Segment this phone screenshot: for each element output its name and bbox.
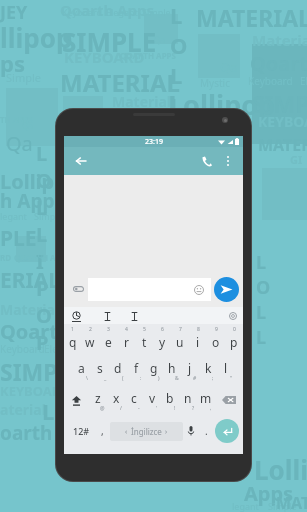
- button[interactable]: 5: [135, 325, 153, 355]
- staticText: Simple: [268, 500, 297, 512]
- staticText: oarth Apps: [0, 420, 104, 446]
- button[interactable]: .: [199, 415, 213, 447]
- staticText: z: [95, 390, 101, 406]
- staticText: g: [150, 360, 158, 376]
- button[interactable]: z: [88, 385, 107, 415]
- staticText: MATEF: [258, 134, 307, 156]
- staticText: Qa: [38, 252, 47, 260]
- staticText: O: [36, 302, 52, 329]
- staticText: l: [224, 360, 228, 376]
- button[interactable]: Cursor left: [102, 311, 112, 321]
- staticText: SIMPL: [0, 356, 71, 387]
- button[interactable]: Attach: [68, 279, 88, 299]
- button[interactable]: b: [161, 385, 179, 415]
- button[interactable]: v: [143, 385, 161, 415]
- staticText: P: [36, 329, 49, 356]
- staticText: L: [256, 300, 267, 325]
- staticText: Keyboard: [248, 74, 293, 88]
- staticText: O: [256, 275, 271, 300]
- staticText: \: [86, 375, 88, 382]
- staticText: j: [188, 360, 192, 376]
- button[interactable]: 6: [153, 325, 171, 355]
- staticText: o: [212, 334, 220, 350]
- button[interactable]: 1: [64, 325, 81, 355]
- staticText: L: [170, 90, 183, 120]
- button[interactable]: Backspace: [215, 385, 243, 415]
- staticText: ›: [165, 427, 168, 437]
- staticText: f: [134, 360, 139, 376]
- button[interactable]: s: [91, 355, 109, 385]
- staticText: ps: [0, 48, 25, 78]
- staticText: I: [36, 248, 44, 275]
- staticText: u: [176, 334, 184, 350]
- button[interactable]: Enter: [215, 419, 239, 443]
- button[interactable]: 4: [117, 325, 135, 355]
- button[interactable]: Settings: [227, 310, 238, 321]
- button[interactable]: ‹: [110, 422, 183, 441]
- staticText: L: [36, 221, 48, 248]
- button[interactable]: Emoji: [192, 283, 206, 297]
- button[interactable]: Voice input mode: [71, 310, 82, 321]
- staticText: y: [159, 334, 166, 350]
- button[interactable]: k: [199, 355, 217, 385]
- button[interactable]: 7: [171, 325, 189, 355]
- staticText: Keyboard: [0, 342, 45, 356]
- staticText: Qoarth Apps: [60, 0, 154, 20]
- staticText: Qoarth: [0, 318, 71, 345]
- staticText: /: [120, 405, 122, 412]
- button[interactable]: d: [109, 355, 127, 385]
- button[interactable]: 0: [225, 325, 243, 355]
- staticText: -: [138, 405, 140, 412]
- button[interactable]: f: [127, 355, 145, 385]
- button[interactable]: a: [72, 355, 91, 385]
- button[interactable]: c: [125, 385, 143, 415]
- button[interactable]: 2: [81, 325, 99, 355]
- button[interactable]: Call: [196, 150, 218, 172]
- staticText: QOARTH APPS: [14, 252, 70, 263]
- staticText: Simple: [142, 6, 171, 18]
- staticText: 7: [179, 326, 182, 333]
- button[interactable]: g: [145, 355, 163, 385]
- button[interactable]: x: [107, 385, 125, 415]
- staticText: (: [122, 375, 124, 382]
- staticText: L: [36, 140, 48, 167]
- button[interactable]: 9: [207, 325, 225, 355]
- staticText: ): [158, 375, 160, 382]
- button[interactable]: j: [181, 355, 199, 385]
- button[interactable]: Shift: [64, 385, 88, 415]
- staticText: 23:19: [145, 137, 163, 147]
- staticText: 6: [161, 326, 164, 333]
- staticText: #: [193, 375, 197, 382]
- staticText: Lollipo: [254, 452, 307, 487]
- button[interactable]: h: [163, 355, 181, 385]
- button[interactable]: Cursor right: [129, 311, 139, 321]
- staticText: ": [230, 375, 233, 382]
- staticText: L: [170, 0, 183, 30]
- button[interactable]: 12#: [68, 415, 94, 447]
- staticText: llipop: [0, 20, 73, 55]
- button[interactable]: 3: [99, 325, 117, 355]
- staticText: b: [166, 390, 174, 406]
- staticText: :: [140, 375, 142, 382]
- button[interactable]: Voice: [183, 415, 199, 447]
- staticText: Lollipop: [0, 168, 80, 195]
- button[interactable]: m: [197, 385, 215, 415]
- button[interactable]: Send: [214, 277, 239, 302]
- button[interactable]: ,: [94, 415, 110, 447]
- button[interactable]: 8: [189, 325, 207, 355]
- staticText: q: [69, 334, 77, 350]
- staticText: MAT: [276, 492, 307, 512]
- staticText: c: [131, 390, 137, 406]
- button[interactable]: l: [217, 355, 235, 385]
- button[interactable]: Emoji: [88, 278, 211, 301]
- button[interactable]: Back: [70, 150, 92, 172]
- staticText: QOARTH APPS: [120, 50, 176, 61]
- button[interactable]: More options: [218, 151, 238, 171]
- button[interactable]: n: [179, 385, 197, 415]
- staticText: m: [200, 390, 212, 406]
